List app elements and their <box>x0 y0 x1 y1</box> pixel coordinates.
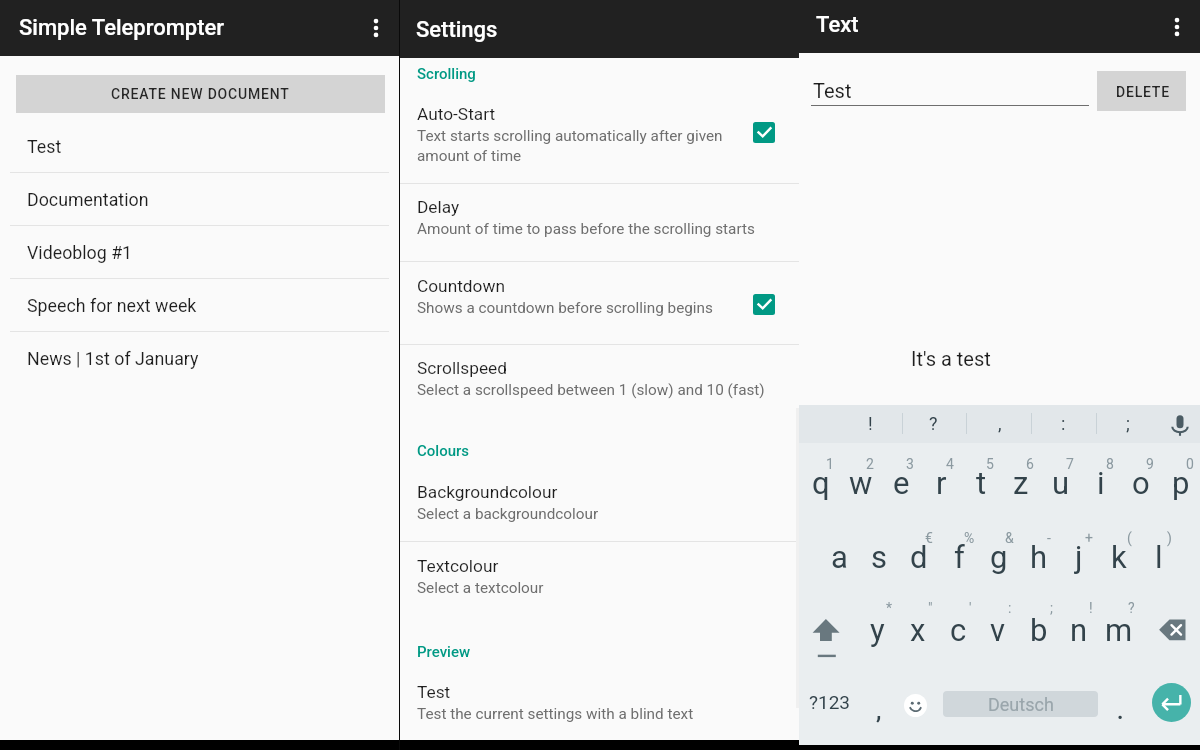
button[interactable]: m <box>1099 600 1139 656</box>
staticText: q <box>812 465 830 501</box>
button[interactable]: a <box>819 527 859 583</box>
button[interactable]: o <box>1121 453 1161 509</box>
button[interactable]: q <box>801 453 841 509</box>
button[interactable]: ! <box>838 405 902 443</box>
staticText: ) <box>1167 530 1172 546</box>
button[interactable]: x <box>898 600 938 656</box>
button[interactable]: Scrollspeed <box>400 346 799 402</box>
staticText: Scrolling <box>417 65 476 83</box>
staticText: z <box>1013 465 1029 501</box>
button[interactable]: u <box>1041 453 1081 509</box>
button[interactable]: Test <box>811 72 1089 108</box>
button[interactable]: Textcolour <box>400 544 799 600</box>
button[interactable]: Test <box>400 670 799 726</box>
button[interactable]: Documentation <box>0 173 399 226</box>
button[interactable]: : <box>1031 405 1095 443</box>
staticText: l <box>1155 539 1163 575</box>
button[interactable]: h <box>1019 527 1059 583</box>
staticText: Simple Teleprompter <box>19 15 225 41</box>
button[interactable]: ? <box>901 405 965 443</box>
button[interactable]: g <box>979 527 1019 583</box>
button[interactable]: n <box>1059 600 1099 656</box>
button[interactable]: . <box>1100 678 1141 744</box>
staticText: m <box>1105 612 1133 648</box>
staticText: c <box>950 612 967 648</box>
button[interactable]: w <box>841 453 881 509</box>
staticText: Text starts scrolling automatically afte… <box>417 127 723 165</box>
staticText: 8 <box>1106 456 1114 472</box>
button[interactable]: Videoblog #1 <box>0 226 399 279</box>
staticText: Select a scrollspeed between 1 (slow) an… <box>417 381 765 399</box>
button[interactable]: c <box>938 600 978 656</box>
button[interactable]: News | 1st of January <box>0 332 399 385</box>
staticText: h <box>1030 539 1048 575</box>
button[interactable]: More options <box>1154 0 1200 53</box>
staticText: Colours <box>417 442 470 460</box>
button[interactable]: Test <box>0 120 399 173</box>
staticText: p <box>1172 465 1190 501</box>
staticText: a <box>831 539 848 575</box>
staticText: 3 <box>906 456 914 472</box>
staticText: News | 1st of January <box>27 348 199 369</box>
staticText: f <box>954 539 965 575</box>
button[interactable]: Voice input <box>1160 405 1200 443</box>
staticText: ! <box>1089 600 1093 616</box>
staticText: ! <box>868 413 873 434</box>
button[interactable]: Speech for next week <box>0 279 399 332</box>
button[interactable]: l <box>1139 527 1179 583</box>
button[interactable]: b <box>1019 600 1059 656</box>
staticText: Test <box>27 136 62 157</box>
button[interactable]: s <box>859 527 899 583</box>
button[interactable]: Delay <box>400 185 799 241</box>
button[interactable]: r <box>921 453 961 509</box>
button[interactable]: t <box>961 453 1001 509</box>
staticText: Test <box>417 682 451 702</box>
button[interactable]: Deutsch <box>943 691 1098 717</box>
button[interactable]: More options <box>353 0 399 56</box>
staticText: Documentation <box>27 189 149 210</box>
button[interactable]: z <box>1001 453 1041 509</box>
staticText: Scrollspeed <box>417 358 508 378</box>
staticText: 2 <box>866 456 874 472</box>
button[interactable]: , <box>859 678 899 744</box>
button[interactable]: Countdown <box>400 264 799 320</box>
button[interactable]: Auto-Start <box>400 92 799 165</box>
button[interactable]: j <box>1059 527 1099 583</box>
staticText: Backgroundcolour <box>417 482 558 502</box>
staticText: Delay <box>417 197 460 217</box>
button[interactable]: y <box>857 600 897 656</box>
button[interactable]: Emoji <box>896 686 935 725</box>
staticText: b <box>1030 612 1048 648</box>
button[interactable]: DELETE <box>1097 71 1186 111</box>
button[interactable]: k <box>1099 527 1139 583</box>
staticText: Countdown <box>417 276 506 296</box>
staticText: 1 <box>826 456 834 472</box>
button[interactable]: p <box>1161 453 1200 509</box>
button[interactable]: i <box>1081 453 1121 509</box>
staticText: 0 <box>1186 456 1194 472</box>
staticText: * <box>886 600 893 616</box>
staticText: j <box>1075 539 1083 575</box>
button[interactable]: d <box>899 527 939 583</box>
button[interactable]: e <box>881 453 921 509</box>
staticText: , <box>998 413 1002 434</box>
button[interactable]: CREATE NEW DOCUMENT <box>16 75 385 113</box>
button[interactable]: , <box>968 405 1032 443</box>
staticText: x <box>910 612 926 648</box>
button[interactable]: f <box>939 527 979 583</box>
button[interactable]: ; <box>1096 405 1160 443</box>
button[interactable]: v <box>978 600 1018 656</box>
button[interactable]: Enter <box>1152 683 1191 722</box>
staticText: & <box>1005 530 1014 546</box>
staticText: Deutsch <box>988 694 1054 715</box>
button[interactable]: Shift <box>799 605 857 677</box>
button[interactable]: ?123 <box>799 678 859 744</box>
staticText: CREATE NEW DOCUMENT <box>111 86 290 102</box>
staticText: " <box>928 600 933 616</box>
staticText: Textcolour <box>417 556 499 576</box>
staticText: w <box>849 465 873 501</box>
button[interactable]: Backgroundcolour <box>400 470 799 526</box>
staticText: ; <box>1050 600 1053 616</box>
staticText: s <box>871 539 887 575</box>
button[interactable]: Backspace <box>1139 605 1200 677</box>
